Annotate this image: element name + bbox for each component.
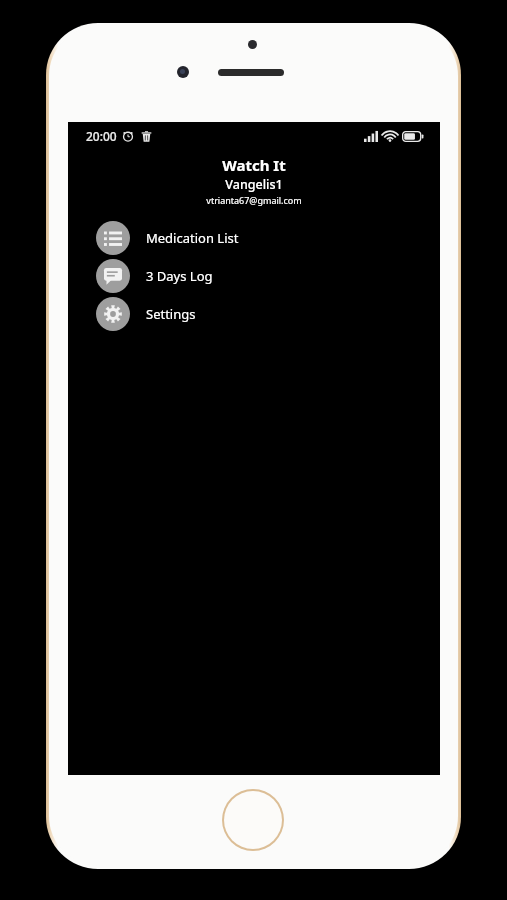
other: 3 Days Log (104, 267, 122, 285)
staticText: Medication List (146, 229, 239, 247)
other: Medication List (104, 229, 122, 247)
staticText: Vangelis1 (225, 176, 283, 193)
staticText: vtrianta67@gmail.com (206, 194, 302, 206)
staticText: 3 Days Log (146, 267, 213, 285)
staticText: Settings (146, 305, 196, 323)
button[interactable]: 3 Days Log (68, 257, 440, 295)
staticText: Watch It (222, 155, 286, 175)
staticText: 20:00 (86, 128, 117, 144)
other: Settings (104, 305, 122, 323)
button[interactable]: Medication List (68, 219, 440, 257)
button[interactable]: Settings (68, 295, 440, 333)
